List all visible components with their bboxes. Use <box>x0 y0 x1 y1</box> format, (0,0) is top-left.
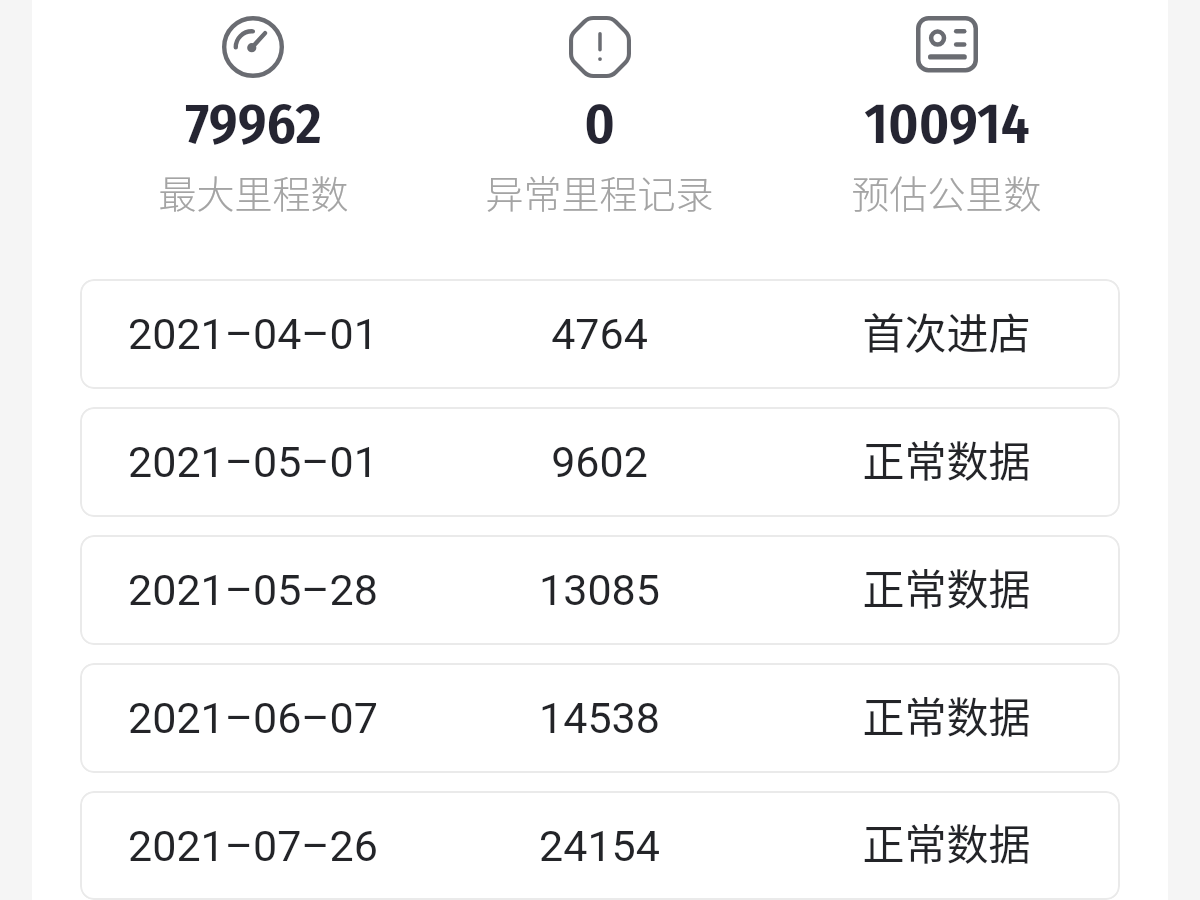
staticText: 正常数据 <box>862 556 1031 617</box>
button[interactable]: Estimated kilometres <box>773 16 1120 212</box>
staticText: 79962 <box>185 90 322 148</box>
staticText: 14538 <box>539 693 660 743</box>
button[interactable]: 2021–05–28 <box>80 535 1120 645</box>
staticText: 2021–06–07 <box>128 693 378 743</box>
staticText: 异常里程记录 <box>485 164 714 212</box>
staticText: 2021–05–28 <box>128 565 378 615</box>
staticText: 2021–05–01 <box>128 437 378 487</box>
button[interactable]: 2021–06–07 <box>80 663 1120 773</box>
staticText: 正常数据 <box>862 684 1031 745</box>
staticText: 24154 <box>539 821 660 871</box>
staticText: 2021–07–26 <box>128 821 378 871</box>
staticText: 13085 <box>539 565 660 615</box>
staticText: 0 <box>584 90 615 148</box>
staticText: 2021–04–01 <box>128 309 378 359</box>
staticText: 9602 <box>551 437 648 487</box>
button[interactable]: 2021–07–26 <box>80 791 1120 900</box>
button[interactable]: Abnormal mileage records <box>426 16 773 212</box>
other: Estimated kilometres <box>916 16 978 78</box>
staticText: 最大里程数 <box>158 164 349 212</box>
other: Maximum mileage <box>222 16 284 78</box>
staticText: 100914 <box>864 90 1030 148</box>
staticText: 正常数据 <box>862 811 1031 872</box>
staticText: 正常数据 <box>862 428 1031 489</box>
staticText: 4764 <box>551 309 648 359</box>
button[interactable]: 2021–05–01 <box>80 407 1120 517</box>
other: Abnormal mileage records <box>569 16 631 78</box>
button[interactable]: Maximum mileage <box>80 16 426 212</box>
staticText: 预估公里数 <box>851 164 1042 212</box>
staticText: 首次进店 <box>862 300 1031 361</box>
button[interactable]: 2021–04–01 <box>80 279 1120 389</box>
